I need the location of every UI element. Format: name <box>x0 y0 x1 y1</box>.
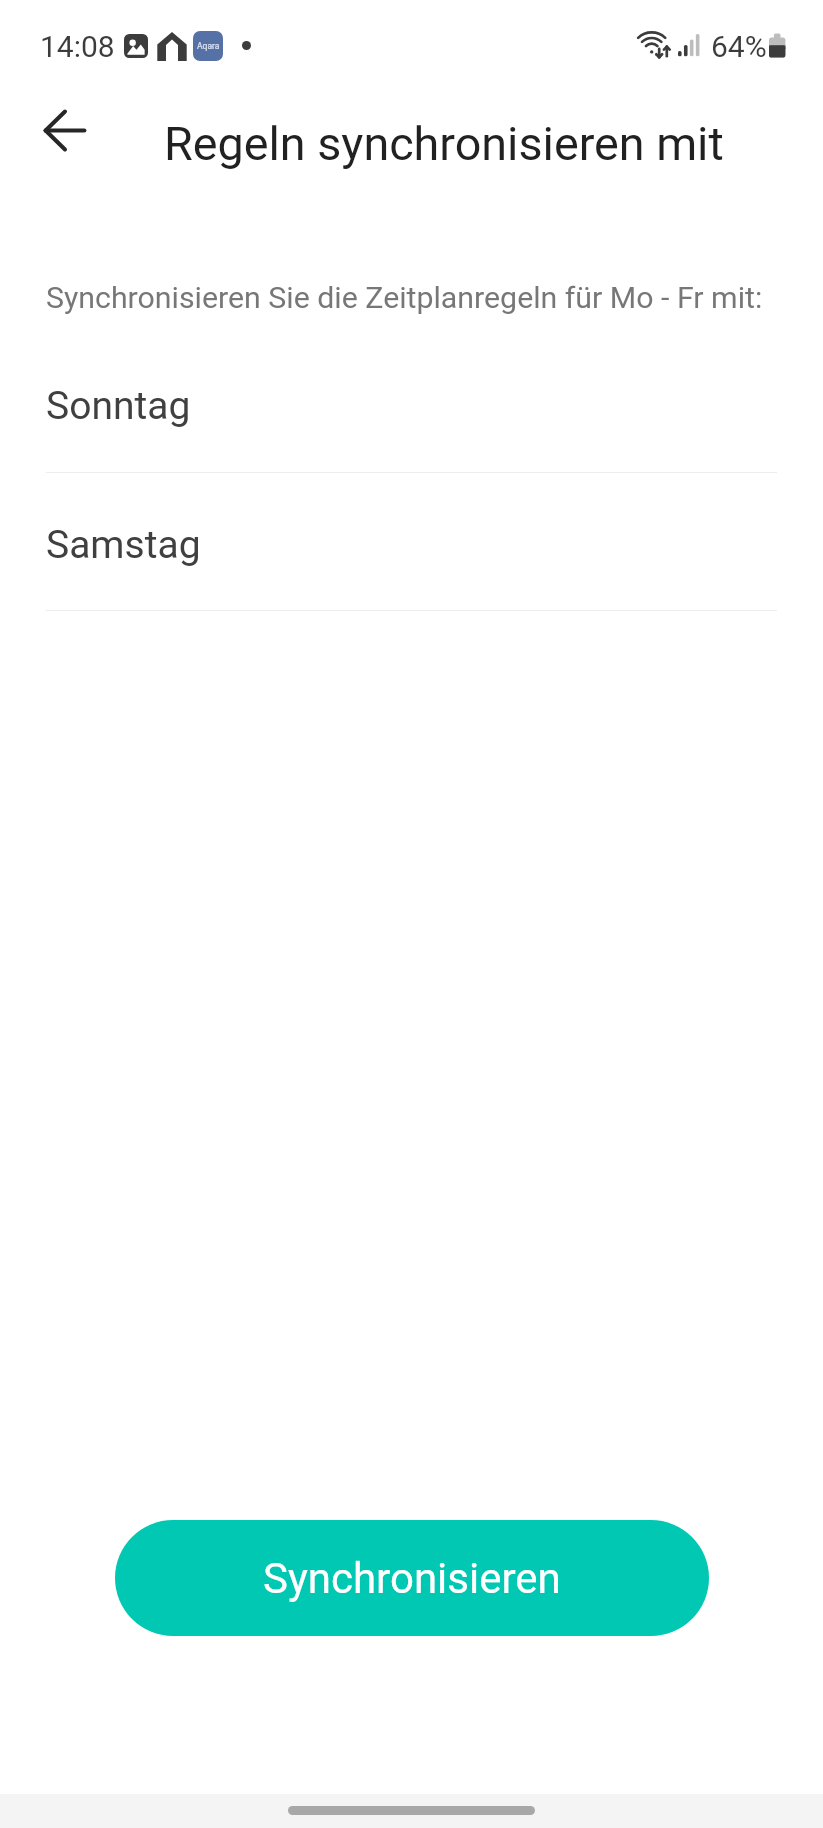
staticText: 14:08 <box>40 29 115 64</box>
button[interactable]: Back <box>24 90 104 170</box>
staticText: Aqara <box>197 41 220 51</box>
staticText: Samstag <box>46 522 201 568</box>
staticText: 64% <box>711 29 767 64</box>
staticText: Regeln synchronisieren mit <box>164 117 724 172</box>
button[interactable]: Synchronisieren <box>115 1520 709 1636</box>
staticText: Sonntag <box>46 383 191 429</box>
button[interactable]: Samstag <box>0 473 823 611</box>
staticText: Synchronisieren <box>263 1554 561 1603</box>
staticText: Synchronisieren Sie die Zeitplanregeln f… <box>46 280 763 316</box>
button[interactable]: Sonntag <box>0 335 823 473</box>
